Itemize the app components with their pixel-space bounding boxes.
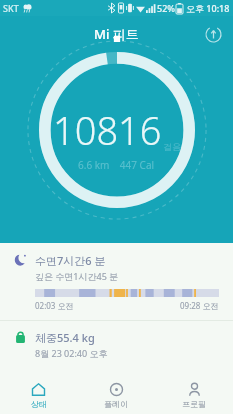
staticText: Mi 피트	[94, 25, 139, 43]
staticText: 09:28 오전	[180, 300, 219, 311]
button[interactable]: 체중55.4 kg	[0, 321, 233, 368]
button[interactable]: 플레이	[77, 376, 155, 414]
staticText: 걸음	[163, 141, 181, 152]
staticText: 플레이	[104, 399, 128, 409]
button[interactable]: 수면7시간6 분	[0, 243, 233, 320]
staticText: 체중55.4 kg	[35, 330, 95, 345]
button[interactable]: Share	[201, 22, 225, 46]
button[interactable]: Steps 10816	[0, 52, 233, 242]
staticText: 수면7시간6 분	[35, 253, 106, 268]
staticText: 6.6 km 447 Cal	[78, 158, 155, 172]
staticText: 깊은 수면1시간45 분	[35, 270, 119, 282]
button[interactable]: 상태	[0, 376, 77, 414]
staticText: 오후 10:18	[186, 2, 230, 14]
staticText: SKT	[3, 2, 19, 14]
staticText: 10816	[53, 104, 162, 156]
staticText: 02:03 오전	[35, 300, 74, 311]
staticText: 52%	[157, 2, 175, 14]
staticText: 프로필	[182, 399, 206, 409]
staticText: 8월 23 02:40 오후	[35, 347, 108, 359]
staticText: 상태	[31, 399, 47, 409]
button[interactable]: 프로필	[155, 376, 233, 414]
